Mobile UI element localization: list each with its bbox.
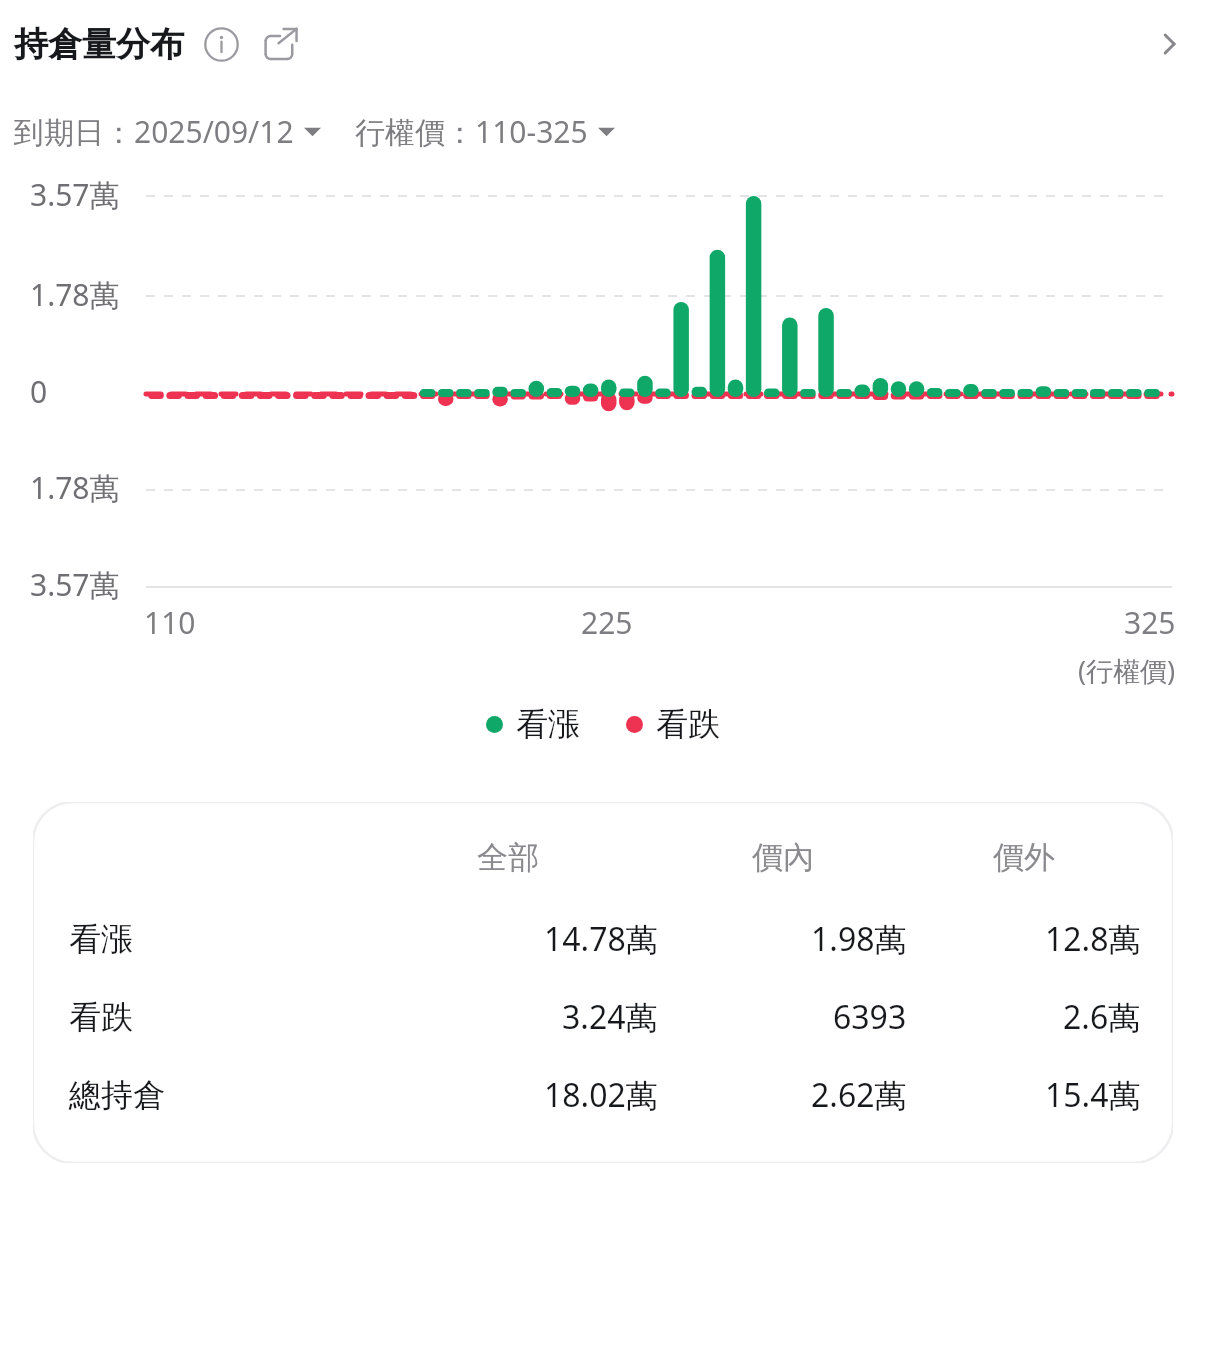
staticText: 1.78萬 <box>30 274 120 315</box>
staticText: 12.8萬 <box>1045 917 1141 961</box>
staticText: 看漲 <box>516 704 580 744</box>
staticText: 全部 <box>477 838 539 877</box>
staticText: 3.57萬 <box>30 564 120 605</box>
button[interactable]: Share <box>258 22 302 66</box>
button[interactable]: Information <box>200 23 242 65</box>
staticText: 0 <box>30 371 48 412</box>
staticText: 看跌 <box>656 704 720 744</box>
staticText: 3.57萬 <box>30 174 120 215</box>
staticText: 到期日：2025/09/12 <box>14 111 294 152</box>
staticText: 總持倉 <box>69 1075 165 1115</box>
staticText: 2.6萬 <box>1063 995 1141 1039</box>
staticText: 18.02萬 <box>544 1073 658 1117</box>
button[interactable]: More details <box>1142 17 1196 71</box>
staticText: 持倉量分布 <box>14 23 184 66</box>
staticText: 15.4萬 <box>1045 1073 1141 1117</box>
staticText: 14.78萬 <box>544 917 658 961</box>
staticText: 6393 <box>833 995 907 1039</box>
staticText: 價外 <box>993 838 1055 877</box>
staticText: 看漲 <box>69 919 133 959</box>
staticText: 110 <box>144 602 196 643</box>
button[interactable]: 持倉量分布 <box>14 23 184 66</box>
staticText: 325 <box>1124 602 1176 643</box>
staticText: 看跌 <box>69 997 133 1037</box>
staticText: 行權價：110-325 <box>355 111 588 152</box>
button[interactable]: 行權價：110-325 <box>355 111 615 152</box>
button[interactable]: 到期日：2025/09/12 <box>14 111 321 152</box>
staticText: 價內 <box>752 838 814 877</box>
staticText: 1.78萬 <box>30 467 120 508</box>
staticText: 2.62萬 <box>811 1073 907 1117</box>
staticText: 3.24萬 <box>562 995 658 1039</box>
staticText: 1.98萬 <box>811 917 907 961</box>
staticText: (行權價) <box>1078 652 1176 689</box>
staticText: 225 <box>581 602 633 643</box>
